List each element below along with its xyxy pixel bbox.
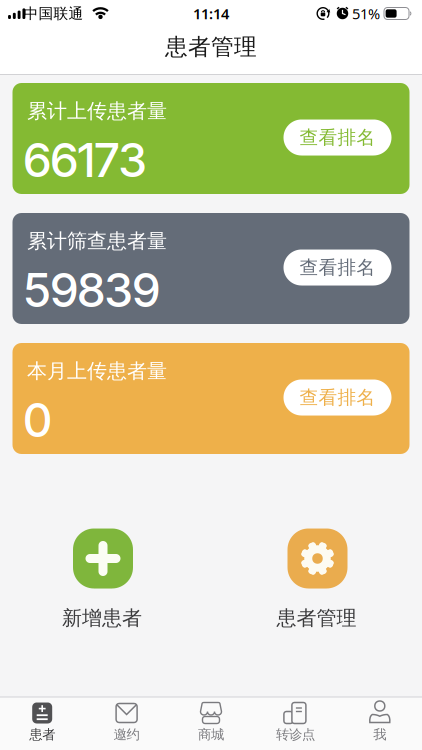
staticText: 患者 (29, 726, 55, 743)
staticText: 中国联通 (23, 4, 83, 22)
staticText: 查看排名 (299, 256, 375, 279)
staticText: 转诊点 (276, 726, 315, 743)
staticText: 查看排名 (299, 386, 375, 409)
staticText: 患者管理 (276, 606, 356, 630)
staticText: 累计上传患者量 (27, 99, 167, 123)
staticText: 51% (352, 4, 380, 23)
staticText: 查看排名 (299, 126, 375, 149)
staticText: 新增患者 (62, 606, 142, 630)
staticText: 患者管理 (165, 33, 257, 61)
staticText: 本月上传患者量 (27, 359, 167, 383)
staticText: 0 (23, 392, 51, 448)
staticText: 邀约 (114, 726, 140, 743)
staticText: 66173 (23, 132, 146, 188)
staticText: 我 (373, 726, 386, 743)
staticText: 59839 (23, 262, 159, 318)
staticText: 11:14 (193, 4, 229, 23)
staticText: 累计筛查患者量 (27, 229, 167, 253)
staticText: 商城 (198, 726, 224, 743)
